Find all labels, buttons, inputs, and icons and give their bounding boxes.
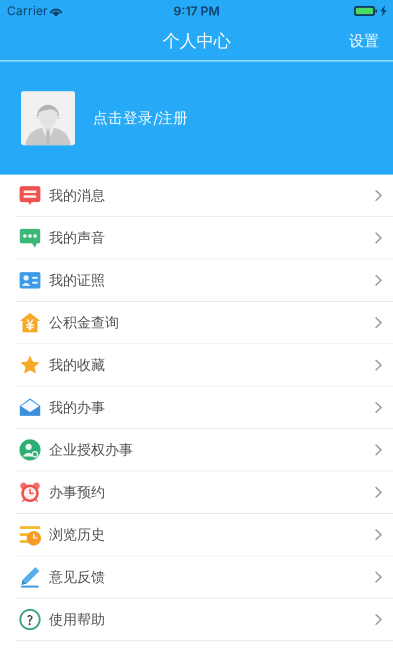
button[interactable]: 意见反馈 <box>0 556 393 599</box>
staticText: 点击登录/注册 <box>93 109 188 127</box>
staticText: 企业授权办事 <box>49 441 133 459</box>
button[interactable]: 办事预约 <box>0 472 393 514</box>
staticText: Carrier <box>7 4 48 18</box>
staticText: 公积金查询 <box>49 314 119 331</box>
staticText: 使用帮助 <box>49 611 105 628</box>
staticText: 意见反馈 <box>49 568 105 586</box>
button[interactable]: 我的证照 <box>0 260 393 302</box>
staticText: 设置 <box>349 31 379 50</box>
staticText: 我的收藏 <box>49 356 105 374</box>
button[interactable]: 我的消息 <box>0 175 393 217</box>
button[interactable]: 我的声音 <box>0 217 393 260</box>
button[interactable]: 使用帮助 <box>0 599 393 641</box>
staticText: 我的办事 <box>49 399 105 416</box>
staticText: 我的消息 <box>49 187 105 204</box>
staticText: 我的证照 <box>49 271 105 289</box>
button[interactable]: 我的办事 <box>0 387 393 429</box>
staticText: 9:17 PM <box>173 4 219 18</box>
staticText: 浏览历史 <box>49 526 105 543</box>
button[interactable]: 我的收藏 <box>0 344 393 387</box>
staticText: 我的声音 <box>49 229 105 247</box>
button[interactable]: 点击登录/注册 <box>0 62 393 175</box>
button[interactable]: 企业授权办事 <box>0 429 393 472</box>
staticText: 办事预约 <box>49 483 105 501</box>
staticText: 个人中心 <box>162 30 230 52</box>
button[interactable]: 设置 <box>335 22 393 60</box>
button[interactable]: 公积金查询 <box>0 302 393 344</box>
button[interactable]: 浏览历史 <box>0 514 393 556</box>
